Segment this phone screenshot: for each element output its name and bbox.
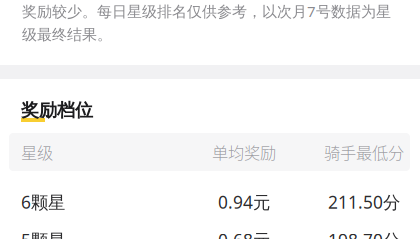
staticText: 奖励较少。每日星级排名仅供参考，以次月7号数据为星级最终结果。 xyxy=(22,1,391,44)
staticText: 0.94元 xyxy=(218,190,270,214)
staticText: 5颗星 xyxy=(21,228,65,239)
staticText: 6颗星 xyxy=(21,190,65,214)
staticText: 单均奖励 xyxy=(212,140,276,164)
staticText: 0.68元 xyxy=(218,228,270,239)
staticText: 星级 xyxy=(21,140,53,164)
staticText: 骑手最低分 xyxy=(324,140,404,164)
staticText: 奖励档位 xyxy=(21,99,93,122)
staticText: 198.70分 xyxy=(328,228,400,239)
staticText: 211.50分 xyxy=(328,190,400,214)
